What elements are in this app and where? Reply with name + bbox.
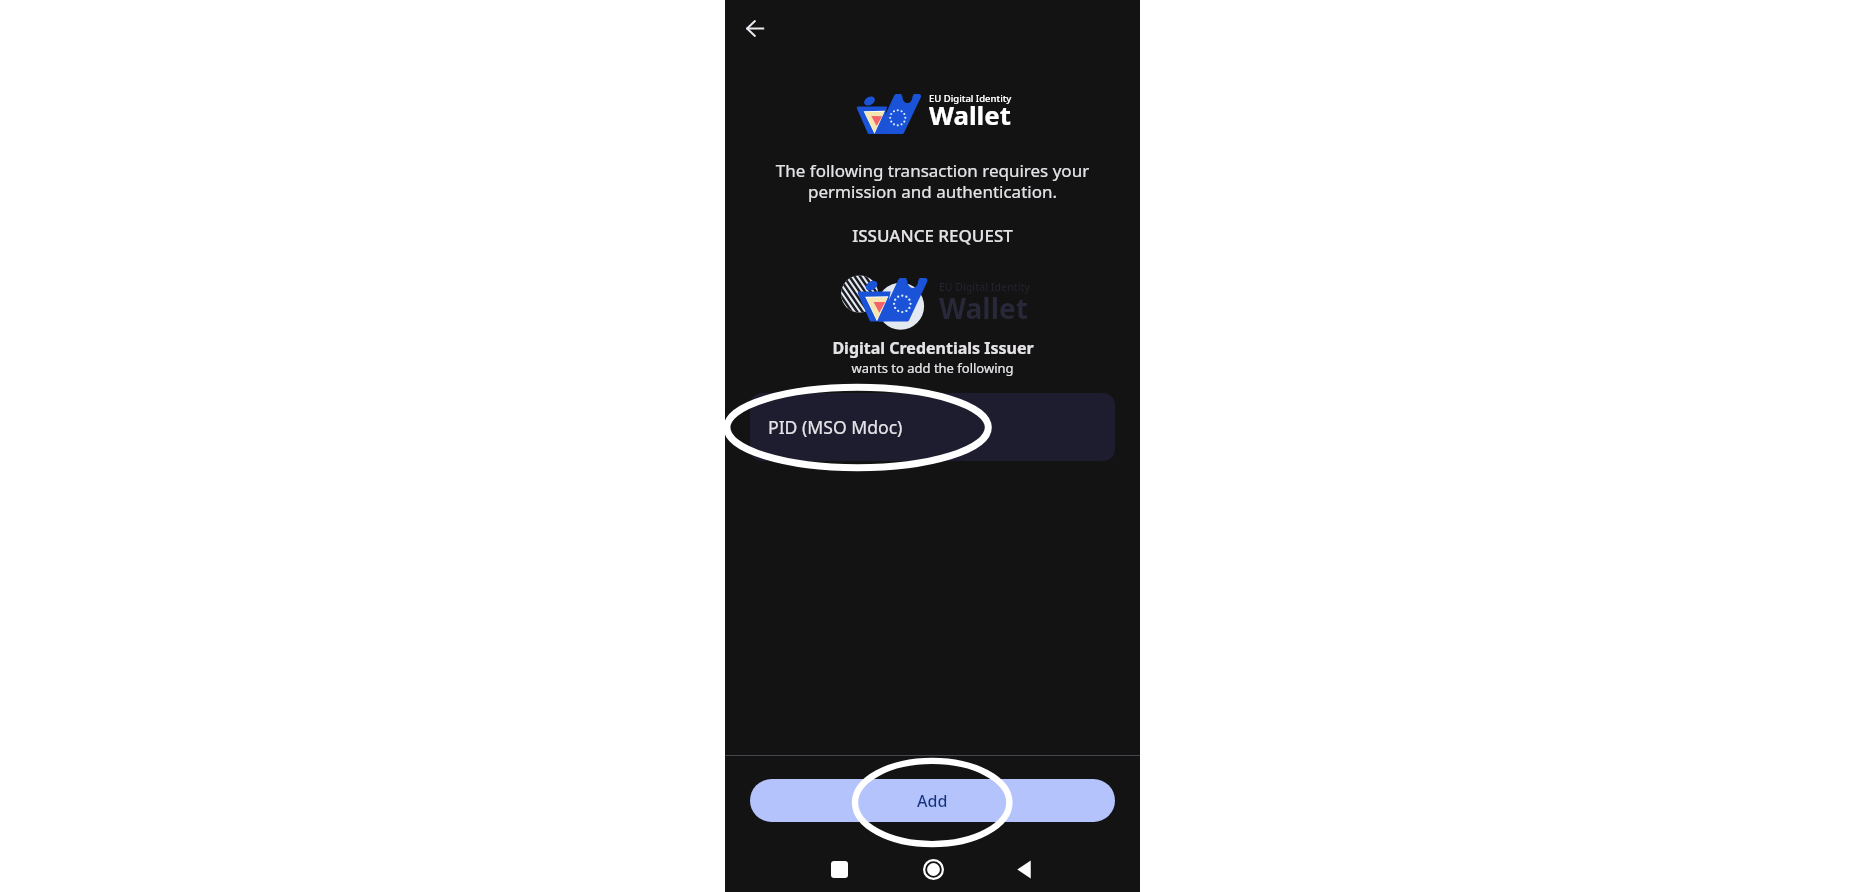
staticText: The following transaction requires your … bbox=[749, 159, 1116, 203]
button[interactable]: PID (MSO Mdoc) bbox=[750, 393, 1115, 461]
button[interactable]: Recent apps bbox=[816, 846, 862, 892]
staticText: EU Digital Identity bbox=[929, 92, 1012, 105]
staticText: ISSUANCE REQUEST bbox=[852, 224, 1013, 247]
button[interactable]: Navigate back bbox=[731, 4, 779, 52]
staticText: wants to add the following bbox=[851, 359, 1014, 377]
staticText: Wallet bbox=[939, 289, 1028, 327]
button[interactable]: Home bbox=[910, 846, 956, 892]
staticText: Wallet bbox=[929, 97, 1011, 132]
staticText: EU Digital Identity bbox=[939, 280, 1031, 294]
button[interactable]: Back bbox=[1001, 846, 1047, 892]
staticText: Digital Credentials Issuer bbox=[832, 337, 1034, 359]
staticText: Add bbox=[917, 790, 948, 812]
button[interactable]: Add bbox=[750, 779, 1115, 822]
staticText: PID (MSO Mdoc) bbox=[768, 415, 903, 439]
